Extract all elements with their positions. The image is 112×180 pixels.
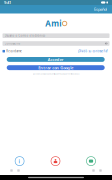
button[interactable]: Adelante: [15, 167, 22, 173]
button[interactable]: Atrás: [8, 167, 15, 173]
button[interactable]: Español: [93, 6, 108, 13]
button[interactable]: Contacto: [85, 155, 97, 167]
staticText: Recordarme: [6, 49, 22, 53]
staticText: Contraseña: [4, 42, 19, 45]
button[interactable]: ¿Olvidó su contraseña?: [77, 49, 107, 53]
staticText: Acceder: [48, 57, 64, 62]
staticText: 9:41: [4, 0, 11, 5]
button[interactable]: Registrarse: [49, 155, 61, 167]
staticText: Al acceder aceptas nuestra Política de P…: [32, 73, 79, 75]
staticText: Usuario o Correo electrónico: [4, 34, 45, 37]
button[interactable]: Entrar con Google: [7, 65, 105, 70]
staticText: Ami: [45, 18, 61, 29]
staticText: i: [19, 158, 21, 165]
staticText: ¿Olvidó su contraseña?: [77, 49, 107, 53]
button[interactable]: Recordarme: [2, 49, 22, 53]
button[interactable]: Compartir: [90, 167, 97, 173]
staticText: Entrar con Google: [38, 65, 73, 70]
staticText: Español: [94, 7, 107, 12]
button[interactable]: Pestañas: [97, 167, 104, 173]
button[interactable]: Acceder: [7, 57, 105, 62]
button[interactable]: Información: [14, 155, 26, 167]
